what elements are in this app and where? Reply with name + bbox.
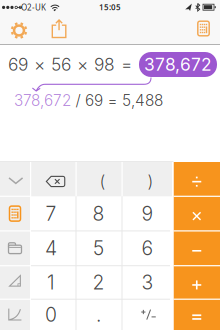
button[interactable]: 4	[30, 231, 75, 266]
button[interactable]: 7	[30, 196, 75, 231]
staticText: 2	[92, 271, 104, 294]
button[interactable]: Hide keypad	[0, 162, 30, 196]
button[interactable]: Functions	[0, 299, 30, 330]
button[interactable]: Trigonometry	[0, 266, 30, 299]
button[interactable]: )	[121, 162, 173, 196]
button[interactable]: Toggle sign	[121, 299, 173, 330]
staticText: 4	[45, 237, 57, 260]
button[interactable]: Add	[173, 266, 220, 299]
staticText: 378,672	[14, 91, 71, 110]
button[interactable]: Equals	[173, 299, 220, 330]
staticText: 98	[94, 54, 115, 75]
button[interactable]: 0	[30, 299, 75, 330]
staticText: 8	[92, 202, 104, 225]
staticText: ×	[34, 54, 45, 75]
staticText: .	[96, 303, 101, 326]
staticText: 56	[51, 54, 71, 75]
staticText: 6	[141, 237, 153, 260]
button[interactable]: Calculator	[193, 16, 213, 40]
button[interactable]: History	[0, 231, 30, 266]
staticText: 69	[85, 91, 103, 110]
staticText: =	[121, 54, 132, 75]
button[interactable]: Divide	[173, 162, 220, 196]
staticText: 5	[93, 237, 104, 260]
staticText: O2-UK	[21, 2, 46, 13]
staticText: (	[99, 171, 105, 191]
staticText: 378,672	[144, 54, 212, 75]
staticText: 0	[45, 303, 57, 326]
button[interactable]: 6	[121, 231, 173, 266]
staticText: 1	[47, 271, 55, 294]
staticText: )	[147, 171, 153, 191]
staticText: 69	[8, 54, 28, 75]
button[interactable]: Delete	[30, 162, 75, 196]
button[interactable]: 8	[75, 196, 121, 231]
button[interactable]: Subtract	[173, 231, 220, 266]
button[interactable]: Share	[48, 18, 70, 42]
staticText: 9	[141, 202, 153, 225]
button[interactable]: Keypad	[0, 196, 30, 231]
button[interactable]: 9	[121, 196, 173, 231]
staticText: 7	[45, 202, 56, 225]
staticText: =	[107, 91, 117, 110]
button[interactable]: 5	[75, 231, 121, 266]
staticText: 3	[141, 271, 153, 294]
button[interactable]: 3	[121, 266, 173, 299]
button[interactable]: 2	[75, 266, 121, 299]
staticText: ×	[77, 54, 88, 75]
button[interactable]: Settings	[7, 18, 31, 42]
button[interactable]: .	[75, 299, 121, 330]
staticText: 5,488	[122, 91, 163, 110]
button[interactable]: Multiply	[173, 196, 220, 231]
staticText: /	[75, 91, 80, 110]
button[interactable]: (	[75, 162, 121, 196]
staticText: 15:05	[99, 2, 121, 12]
button[interactable]: 378,672	[139, 52, 217, 77]
button[interactable]: 1	[30, 266, 75, 299]
